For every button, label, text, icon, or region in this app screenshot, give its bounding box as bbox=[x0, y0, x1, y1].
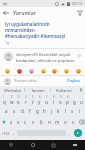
staticText: 0 bbox=[67, 95, 69, 99]
button[interactable]: 5 bbox=[29, 94, 36, 105]
button[interactable]: i bbox=[76, 105, 83, 116]
button[interactable]: a bbox=[2, 105, 10, 116]
button[interactable]: z bbox=[8, 116, 15, 127]
button[interactable]: s bbox=[69, 105, 76, 116]
button[interactable]: Shift bbox=[0, 116, 8, 127]
staticText: y bbox=[38, 99, 41, 105]
button[interactable]: l bbox=[62, 105, 69, 116]
button[interactable]: 0 bbox=[64, 94, 71, 105]
staticText: l bbox=[65, 108, 67, 114]
button[interactable]: . bbox=[66, 127, 72, 139]
button[interactable]: h bbox=[41, 105, 48, 116]
button[interactable]: Emoji bbox=[63, 68, 69, 74]
button[interactable]: Yorum ekle... bbox=[14, 78, 66, 84]
button[interactable]: Back bbox=[0, 7, 11, 18]
staticText: g bbox=[36, 108, 39, 114]
button[interactable]: Keyboard bbox=[64, 140, 85, 150]
button[interactable]: iyi uygulamalarinizin mimarisinden #hers… bbox=[0, 18, 85, 48]
staticText: r bbox=[25, 99, 27, 105]
staticText: s bbox=[71, 108, 74, 114]
button[interactable]: Enter bbox=[72, 127, 84, 139]
button[interactable]: 9 bbox=[57, 94, 64, 105]
button[interactable]: k bbox=[55, 105, 62, 116]
staticText: . bbox=[68, 130, 70, 136]
button[interactable]: u bbox=[78, 94, 85, 105]
staticText: , bbox=[13, 130, 15, 136]
button[interactable]: Emoji bbox=[75, 68, 81, 74]
button[interactable]: Tamam bbox=[25, 86, 50, 94]
staticText: k bbox=[57, 108, 60, 114]
button[interactable]: x bbox=[15, 116, 22, 127]
button[interactable]: Home bbox=[22, 140, 43, 150]
staticText: 2 bbox=[11, 95, 13, 99]
button[interactable]: deniyem95 Kesinliklé onyok baslardan, e… bbox=[0, 49, 85, 66]
staticText: x bbox=[17, 119, 20, 125]
button[interactable]: c bbox=[69, 116, 77, 127]
button[interactable]: n bbox=[45, 116, 53, 127]
staticText: a bbox=[5, 108, 8, 114]
staticText: 1g bbox=[5, 40, 10, 45]
button[interactable]: j bbox=[48, 105, 55, 116]
button[interactable]: Back bbox=[0, 140, 22, 150]
staticText: Yorum ekle... bbox=[14, 78, 40, 84]
staticText: g bbox=[73, 99, 76, 105]
staticText: 20:13 bbox=[72, 1, 83, 6]
button[interactable]: ?123 bbox=[1, 127, 11, 139]
staticText: Yorumlar bbox=[13, 9, 36, 16]
button[interactable]: 6 bbox=[36, 94, 43, 105]
staticText: i bbox=[79, 108, 81, 114]
button[interactable]: b bbox=[37, 116, 45, 127]
staticText: z bbox=[10, 119, 13, 125]
button[interactable]: Like bbox=[75, 52, 82, 59]
staticText: h bbox=[43, 108, 46, 114]
button[interactable]: Emoji bbox=[51, 68, 57, 74]
staticText: Paylas bbox=[67, 78, 80, 84]
button[interactable]: Merhaba bbox=[0, 86, 24, 94]
button[interactable]: 2 bbox=[8, 94, 15, 105]
staticText: 6 bbox=[39, 95, 41, 99]
button[interactable]: Backspace bbox=[77, 116, 85, 127]
staticText: t bbox=[32, 99, 34, 105]
staticText: q bbox=[3, 99, 6, 105]
staticText: Tamam bbox=[31, 88, 45, 93]
staticText: c bbox=[72, 119, 75, 125]
button[interactable]: m bbox=[53, 116, 61, 127]
button[interactable]: Paylas bbox=[66, 77, 81, 85]
staticText: o bbox=[59, 99, 62, 105]
staticText: u bbox=[45, 99, 48, 105]
staticText: u bbox=[80, 99, 83, 105]
button[interactable]: Emoji bbox=[28, 68, 34, 74]
button[interactable]: , bbox=[11, 127, 17, 139]
button[interactable]: Emoji bbox=[16, 68, 22, 74]
button[interactable]: Kullanici bbox=[51, 86, 76, 94]
staticText: f bbox=[29, 108, 31, 114]
button[interactable]: g bbox=[34, 105, 41, 116]
staticText: 9 bbox=[60, 95, 62, 99]
button[interactable]: d bbox=[18, 105, 26, 116]
staticText: Merhaba bbox=[4, 88, 21, 93]
button[interactable]: 8 bbox=[50, 94, 57, 105]
button[interactable]: Recents bbox=[43, 140, 64, 150]
button[interactable]: 7 bbox=[43, 94, 50, 105]
staticText: s bbox=[13, 108, 16, 114]
staticText: deniyem95 Kesinliklé onyok baslardan, e… bbox=[16, 52, 75, 66]
button[interactable]: Emoji bbox=[4, 68, 10, 74]
staticText: n bbox=[48, 119, 51, 125]
button[interactable]: Filter bbox=[74, 7, 85, 18]
button[interactable]: Emoji bbox=[40, 68, 46, 74]
button[interactable]: c bbox=[22, 116, 29, 127]
staticText: w bbox=[10, 99, 14, 105]
button[interactable]: s bbox=[10, 105, 18, 116]
button[interactable]: 1 bbox=[0, 94, 8, 105]
staticText: 1 bbox=[3, 95, 5, 99]
button[interactable]: Voice input bbox=[76, 86, 85, 94]
button[interactable]: f bbox=[26, 105, 34, 116]
button[interactable]: 4 bbox=[22, 94, 29, 105]
staticText: v bbox=[32, 119, 35, 125]
button[interactable]: 3 bbox=[15, 94, 22, 105]
staticText: p bbox=[66, 99, 69, 105]
button[interactable]: g bbox=[71, 94, 78, 105]
button[interactable]: v bbox=[29, 116, 37, 127]
button[interactable]: o bbox=[61, 116, 69, 127]
